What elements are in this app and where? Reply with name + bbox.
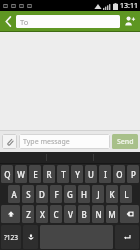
staticText: E — [33, 169, 38, 180]
button[interactable]: C — [50, 205, 62, 223]
staticText: X — [40, 209, 45, 220]
button[interactable]: X — [36, 205, 48, 223]
button[interactable]: Backspace — [120, 205, 139, 223]
staticText: J — [97, 189, 100, 200]
staticText: H — [81, 189, 87, 200]
button[interactable]: S — [22, 185, 34, 203]
staticText: C — [53, 209, 59, 220]
staticText: F — [54, 189, 59, 200]
button[interactable]: I — [99, 165, 111, 183]
staticText: ?123 — [4, 233, 18, 242]
button[interactable]: E — [29, 165, 41, 183]
staticText: N — [95, 209, 102, 220]
button[interactable]: ?123 — [1, 225, 21, 249]
button[interactable]: Enter — [115, 225, 139, 249]
button[interactable]: K — [106, 185, 118, 203]
staticText: P — [131, 169, 136, 180]
staticText: A — [11, 189, 17, 200]
staticText: G — [67, 189, 73, 200]
button[interactable]: J — [92, 185, 104, 203]
button[interactable]: P — [127, 165, 139, 183]
button[interactable]: B — [78, 205, 90, 223]
button[interactable]: H — [78, 185, 90, 203]
button[interactable]: N — [92, 205, 104, 223]
button[interactable]: L — [120, 185, 132, 203]
staticText: To — [20, 17, 29, 27]
staticText: U — [88, 169, 94, 180]
button[interactable]: W — [15, 165, 27, 183]
button[interactable]: Attach — [2, 134, 17, 149]
staticText: S — [26, 189, 31, 200]
staticText: R — [46, 169, 52, 180]
button[interactable]: A — [8, 185, 20, 203]
staticText: Send — [117, 137, 134, 147]
button[interactable]: Z — [22, 205, 34, 223]
button[interactable]: F — [50, 185, 62, 203]
button[interactable]: To — [16, 15, 120, 28]
button[interactable]: Send — [112, 134, 138, 149]
button[interactable]: Voice input — [23, 225, 38, 249]
staticText: T — [61, 169, 66, 180]
staticText: Z — [26, 209, 31, 220]
staticText: 13:11 — [120, 1, 138, 11]
button[interactable]: Q — [1, 165, 13, 183]
staticText: D — [39, 189, 45, 200]
button[interactable]: G — [64, 185, 76, 203]
button[interactable]: M — [106, 205, 118, 223]
button[interactable]: R — [43, 165, 55, 183]
button[interactable]: Type message — [19, 134, 110, 149]
staticText: I — [104, 169, 107, 180]
staticText: W — [17, 169, 25, 180]
staticText: M — [108, 209, 116, 220]
button[interactable]: Add contact — [120, 11, 140, 31]
button[interactable]: U — [85, 165, 97, 183]
button[interactable]: Shift — [1, 205, 20, 223]
staticText: B — [81, 209, 87, 220]
staticText: Y — [75, 169, 80, 180]
staticText: V — [68, 209, 73, 220]
button[interactable]: Back — [0, 11, 16, 31]
staticText: Type message — [23, 137, 70, 147]
staticText: Q — [4, 169, 11, 180]
staticText: O — [116, 169, 123, 180]
staticText: L — [124, 189, 129, 200]
button[interactable]: Y — [71, 165, 83, 183]
button[interactable]: D — [36, 185, 48, 203]
button[interactable]: V — [64, 205, 76, 223]
button[interactable]: O — [113, 165, 125, 183]
staticText: K — [109, 189, 115, 200]
button[interactable]: T — [57, 165, 69, 183]
